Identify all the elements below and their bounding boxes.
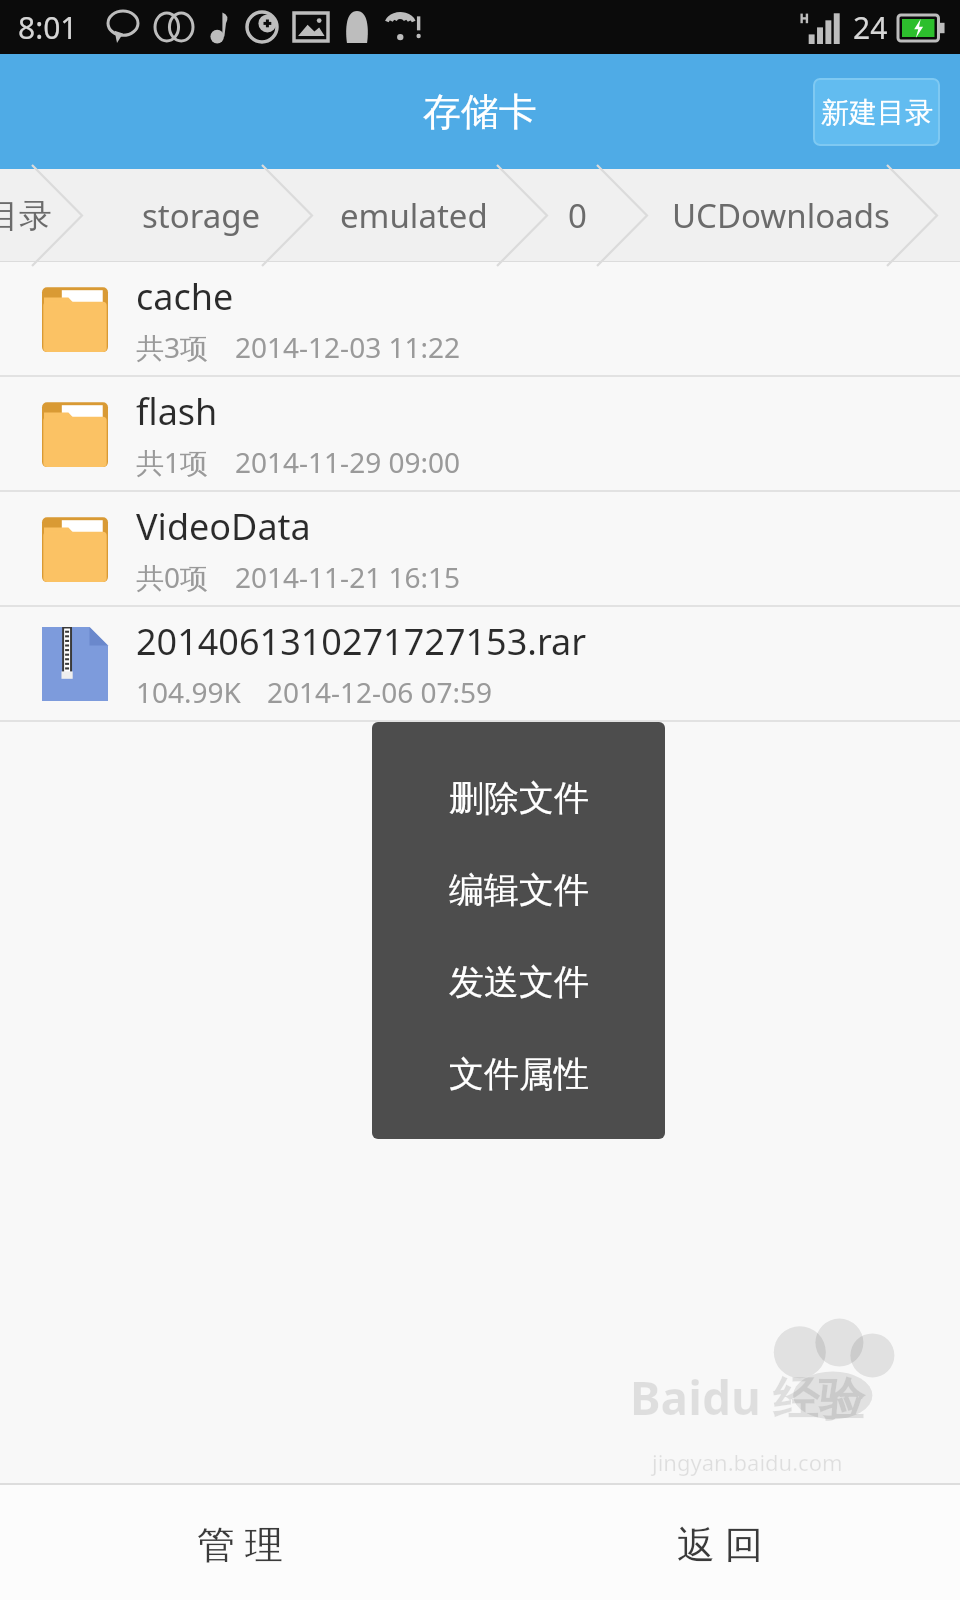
staticText: 8:01 — [18, 7, 78, 48]
staticText: 2014-12-06 07:59 — [267, 673, 493, 711]
button[interactable]: cache — [0, 262, 960, 377]
button[interactable]: 新建目录 — [813, 78, 940, 146]
staticText: 2014-12-03 11:22 — [235, 328, 461, 366]
staticText: 0 — [568, 193, 587, 238]
staticText: VideoData — [136, 502, 311, 551]
button[interactable]: 编辑文件 — [372, 844, 665, 936]
staticText: jingyan.baidu.com — [652, 1447, 843, 1477]
staticText: 24 — [853, 7, 888, 48]
button[interactable]: 删除文件 — [372, 752, 665, 844]
staticText: 目录 — [0, 195, 52, 237]
button[interactable]: VideoData — [0, 492, 960, 607]
staticText: storage — [142, 193, 261, 238]
staticText: emulated — [340, 193, 488, 238]
staticText: Baidu 经验 — [630, 1366, 865, 1429]
button[interactable]: flash — [0, 377, 960, 492]
staticText: 编辑文件 — [449, 868, 589, 912]
button[interactable]: 返 回 — [480, 1485, 960, 1600]
staticText: 新建目录 — [821, 95, 933, 130]
staticText: UCDownloads — [672, 193, 890, 238]
button[interactable]: 文件属性 — [372, 1028, 665, 1120]
staticText: 返 回 — [677, 1517, 763, 1569]
staticText: 管 理 — [197, 1517, 283, 1569]
staticText: 共1项 — [136, 443, 209, 481]
button[interactable]: 2014061310271727153.rar — [0, 607, 960, 722]
staticText: 2014061310271727153.rar — [136, 617, 587, 666]
staticText: flash — [136, 387, 218, 436]
staticText: 文件属性 — [449, 1052, 589, 1096]
staticText: 2014-11-29 09:00 — [235, 443, 461, 481]
button[interactable]: 发送文件 — [372, 936, 665, 1028]
staticText: 104.99K — [136, 673, 241, 711]
staticText: 共3项 — [136, 328, 209, 366]
staticText: 删除文件 — [449, 776, 589, 820]
staticText: 2014-11-21 16:15 — [235, 558, 461, 596]
staticText: 存储卡 — [423, 88, 537, 136]
staticText: cache — [136, 272, 234, 321]
staticText: 共0项 — [136, 558, 209, 596]
button[interactable]: 管 理 — [0, 1485, 480, 1600]
staticText: 发送文件 — [449, 960, 589, 1004]
